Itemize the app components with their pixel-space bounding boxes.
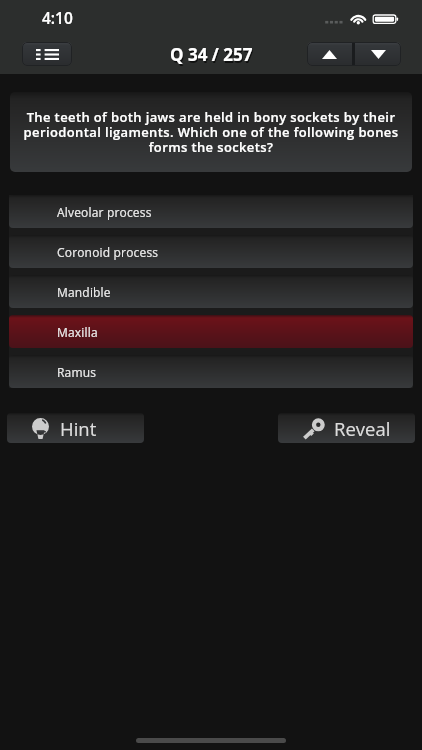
staticText: Ramus (57, 364, 97, 380)
button[interactable]: Hint (7, 413, 144, 443)
button[interactable]: Next question (355, 42, 401, 66)
button[interactable]: Ramus (9, 355, 413, 388)
button[interactable]: Alveolar process (9, 195, 413, 228)
button[interactable]: Mandible (9, 275, 413, 308)
staticText: Coronoid process (57, 244, 159, 260)
button[interactable]: Reveal (278, 413, 415, 443)
staticText: The teeth of both jaws are held in bony … (23, 108, 399, 156)
button[interactable]: Maxilla (9, 315, 413, 348)
staticText: Q 34 / 257 (171, 45, 254, 68)
staticText: Hint (60, 416, 97, 441)
button[interactable]: Question list (22, 42, 72, 66)
staticText: 4:10 (42, 7, 73, 28)
staticText: Q 34 / 257 (170, 43, 253, 66)
staticText: Mandible (57, 284, 111, 300)
button[interactable]: Coronoid process (9, 235, 413, 268)
staticText: Alveolar process (57, 204, 152, 220)
staticText: Reveal (334, 416, 391, 441)
button[interactable]: Previous question (307, 42, 352, 66)
staticText: Maxilla (57, 324, 98, 340)
